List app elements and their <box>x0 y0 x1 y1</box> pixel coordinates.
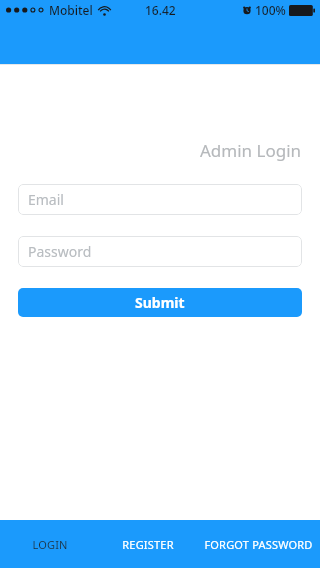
staticText: Password <box>28 242 92 261</box>
staticText: Submit <box>135 293 185 312</box>
staticText: Admin Login <box>200 139 302 162</box>
staticText: 100% <box>255 2 286 18</box>
button[interactable]: Password <box>18 236 302 267</box>
button[interactable]: FORGOT PASSWORD <box>197 520 320 568</box>
staticText: FORGOT PASSWORD <box>204 537 313 552</box>
staticText: 16.42 <box>145 2 176 18</box>
staticText: LOGIN <box>32 537 68 552</box>
staticText: Mobitel <box>49 2 93 18</box>
button[interactable]: Email <box>18 184 302 215</box>
button[interactable]: Submit <box>18 288 302 317</box>
button[interactable]: LOGIN <box>0 520 99 568</box>
staticText: Email <box>28 190 64 209</box>
staticText: REGISTER <box>122 537 174 552</box>
button[interactable]: REGISTER <box>99 520 197 568</box>
